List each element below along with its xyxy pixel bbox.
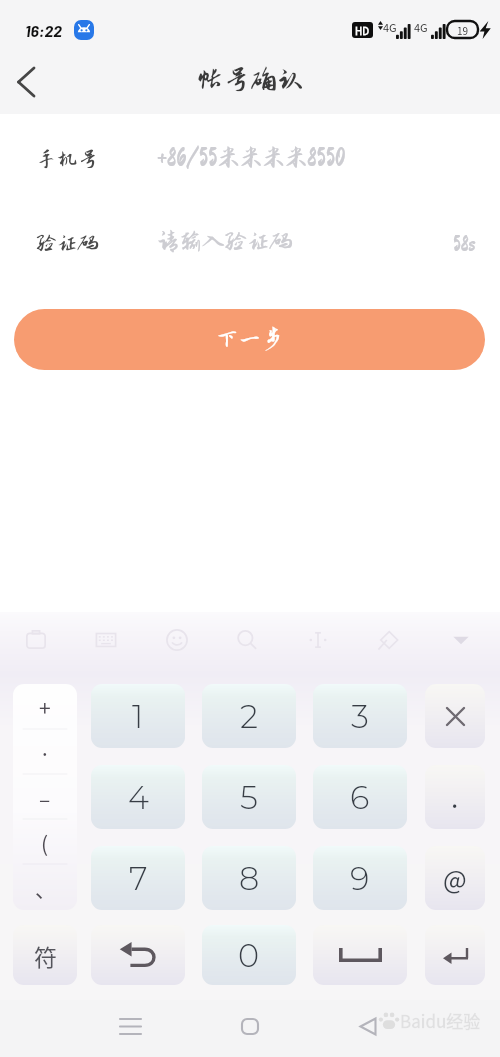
staticText: 19 bbox=[457, 23, 469, 37]
button[interactable]: Home bbox=[226, 1002, 274, 1050]
button[interactable]: 7 bbox=[91, 846, 185, 910]
button[interactable]: 5 bbox=[202, 765, 296, 829]
other: HD voice bbox=[352, 22, 373, 38]
staticText: 下一步 bbox=[216, 327, 284, 352]
staticText: 符 bbox=[34, 939, 57, 972]
button[interactable]: 1 bbox=[91, 684, 185, 748]
staticText: 6 bbox=[350, 778, 370, 817]
staticText: 2 bbox=[240, 697, 259, 736]
staticText: 1 bbox=[132, 697, 144, 736]
staticText: @ bbox=[443, 860, 467, 896]
button[interactable]: Search bbox=[223, 616, 271, 664]
button[interactable]: Symbol keyboard bbox=[13, 925, 77, 985]
button[interactable]: Handwriting bbox=[364, 616, 412, 664]
staticText: 请输入验证码 bbox=[157, 229, 293, 254]
staticText: 4G bbox=[383, 19, 397, 35]
button[interactable]: Return bbox=[91, 925, 185, 985]
staticText: Baidu经验 bbox=[400, 1008, 481, 1033]
button[interactable]: 4 bbox=[91, 765, 185, 829]
button[interactable]: 9 bbox=[313, 846, 407, 910]
button[interactable]: 手机号 bbox=[0, 134, 500, 184]
button[interactable]: Emoji bbox=[153, 616, 201, 664]
staticText: 帐号确认 bbox=[196, 65, 304, 95]
button[interactable]: 验证码 bbox=[0, 218, 500, 268]
staticText: 5 bbox=[240, 778, 258, 817]
button[interactable]: Back bbox=[0, 50, 54, 114]
button[interactable]: 2 bbox=[202, 684, 296, 748]
other: App notification bbox=[74, 20, 94, 40]
button[interactable]: Collapse keyboard bbox=[437, 616, 485, 664]
button[interactable]: 58s bbox=[440, 224, 488, 264]
button[interactable]: Clipboard bbox=[12, 616, 60, 664]
button[interactable]: Back bbox=[344, 1002, 392, 1050]
staticText: ( bbox=[41, 828, 49, 858]
button[interactable]: 3 bbox=[313, 684, 407, 748]
staticText: 58s bbox=[453, 234, 476, 255]
staticText: 3 bbox=[351, 697, 369, 736]
button[interactable]: Symbols bbox=[13, 684, 77, 910]
button[interactable]: Keyboard settings bbox=[82, 616, 130, 664]
staticText: 手机号 bbox=[36, 148, 99, 171]
staticText: 0 bbox=[238, 936, 260, 975]
other: Mobile signal 4G bbox=[413, 20, 447, 40]
button[interactable]: 6 bbox=[313, 765, 407, 829]
button[interactable]: Move cursor bbox=[294, 616, 342, 664]
button[interactable]: Period bbox=[425, 765, 485, 829]
button[interactable]: 0 bbox=[202, 925, 296, 985]
staticText: 验证码 bbox=[36, 232, 99, 255]
staticText: – bbox=[39, 783, 51, 813]
staticText: + bbox=[39, 692, 51, 722]
staticText: 16:22 bbox=[25, 21, 62, 40]
other: Battery 19 percent, charging bbox=[447, 21, 493, 40]
button[interactable]: At sign bbox=[425, 846, 485, 910]
button[interactable]: Space bbox=[313, 925, 407, 985]
staticText: +86/55米米米米8550 bbox=[157, 145, 346, 170]
staticText: . bbox=[451, 778, 459, 816]
staticText: 7 bbox=[129, 859, 148, 898]
staticText: 4G bbox=[414, 19, 428, 35]
staticText: 9 bbox=[350, 859, 370, 898]
button[interactable]: Enter bbox=[425, 925, 485, 985]
staticText: 、 bbox=[35, 873, 56, 903]
staticText: · bbox=[39, 738, 51, 768]
staticText: 4 bbox=[128, 778, 149, 817]
staticText: HD bbox=[355, 23, 370, 37]
staticText: 8 bbox=[239, 859, 260, 898]
button[interactable]: 下一步 bbox=[14, 309, 485, 370]
button[interactable]: Delete bbox=[425, 684, 485, 748]
button[interactable]: 8 bbox=[202, 846, 296, 910]
button[interactable]: Recent apps bbox=[106, 1002, 154, 1050]
other: Mobile signal 4G bbox=[378, 20, 412, 40]
